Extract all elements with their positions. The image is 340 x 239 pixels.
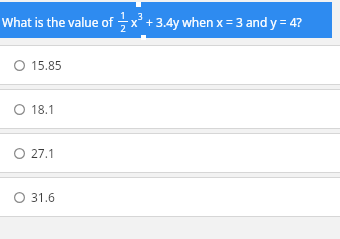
button[interactable]: 18.1 xyxy=(0,90,340,128)
button[interactable]: 15.85 xyxy=(0,46,340,84)
staticText: 1 xyxy=(120,9,126,21)
staticText: 3 xyxy=(138,11,143,22)
button[interactable]: 31.6 xyxy=(0,178,340,216)
button[interactable]: 27.1 xyxy=(0,134,340,172)
staticText: 15.85 xyxy=(31,57,62,73)
staticText: What is the value of xyxy=(2,14,117,30)
staticText: 2 xyxy=(120,22,126,34)
staticText: x xyxy=(131,14,138,30)
staticText: 27.1 xyxy=(31,145,55,161)
staticText: 31.6 xyxy=(31,189,55,205)
staticText: 18.1 xyxy=(31,101,55,117)
staticText: + 3.4y when x = 3 and y = 4? xyxy=(143,14,302,30)
button[interactable]: What is the value of xyxy=(0,2,332,40)
